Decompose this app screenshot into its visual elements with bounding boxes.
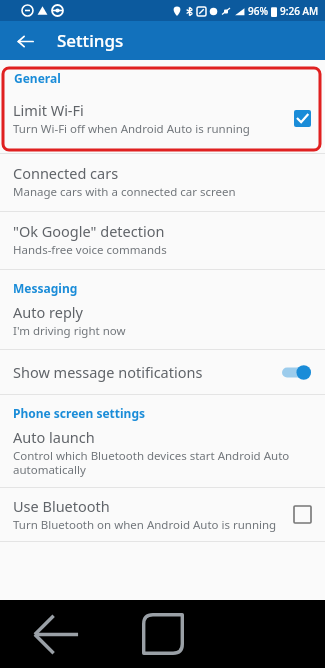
staticText: Manage cars with a connected car screen [13, 184, 236, 200]
staticText: Control which Bluetooth devices start An… [13, 448, 311, 477]
button[interactable]: Back [0, 600, 110, 668]
button[interactable]: "Ok Google" detection [0, 212, 325, 269]
button[interactable]: Connected cars [0, 154, 325, 211]
staticText: Use Bluetooth [13, 496, 110, 516]
staticText: Settings [57, 29, 124, 52]
staticText: Hands-free voice commands [13, 242, 167, 258]
staticText: Auto launch [13, 427, 95, 447]
button[interactable]: Recent apps [110, 600, 215, 668]
button[interactable]: Use Bluetooth [0, 488, 325, 541]
button[interactable]: Show message notifications [0, 350, 325, 394]
staticText: Limit Wi-Fi [13, 100, 84, 120]
button[interactable]: Auto launch [0, 425, 325, 487]
button[interactable]: Auto reply [0, 300, 325, 349]
staticText: I'm driving right now [13, 323, 126, 339]
staticText: Connected cars [13, 163, 119, 183]
staticText: Show message notifications [13, 362, 282, 382]
staticText: Turn Bluetooth on when Android Auto is r… [13, 517, 277, 533]
staticText: Auto reply [13, 302, 83, 322]
button[interactable]: Back [10, 26, 40, 56]
button[interactable]: Limit Wi-Fi [0, 92, 325, 145]
staticText: Phone screen settings [13, 405, 146, 421]
staticText: "Ok Google" detection [13, 221, 165, 241]
staticText: 9:26 AM [280, 4, 319, 18]
staticText: Turn Wi-Fi off when Android Auto is runn… [13, 121, 250, 137]
staticText: 96% [248, 4, 268, 18]
staticText: Messaging [13, 280, 78, 296]
staticText: General [14, 70, 61, 86]
